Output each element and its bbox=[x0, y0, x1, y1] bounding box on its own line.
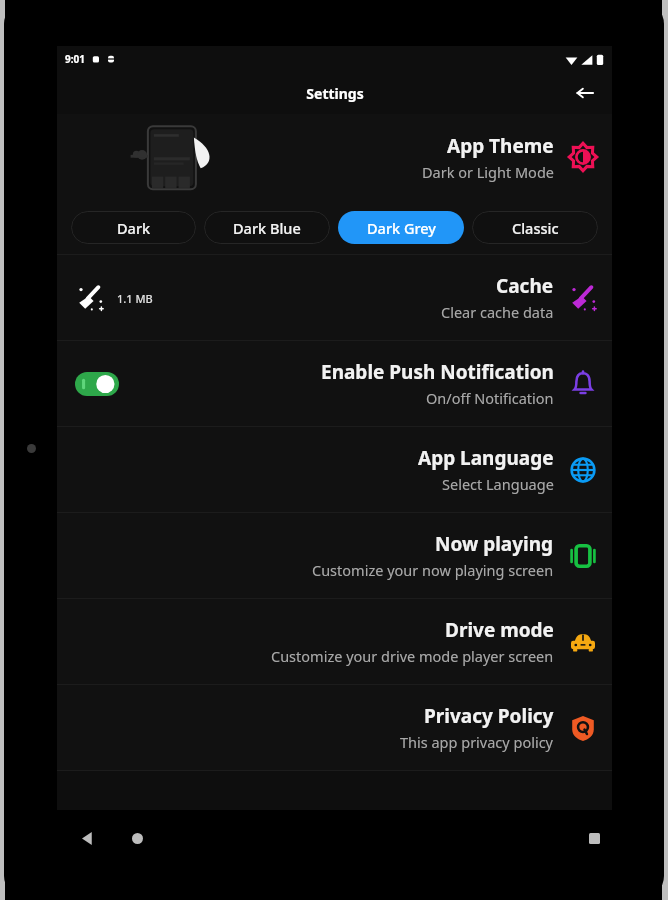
staticText: Settings bbox=[306, 84, 364, 103]
staticText: Cache bbox=[496, 273, 554, 299]
staticText: On/off Notification bbox=[426, 388, 554, 408]
button[interactable]: Dark Grey bbox=[338, 211, 464, 244]
button[interactable]: Classic bbox=[472, 211, 598, 244]
button[interactable]: Enable Push Notification toggle bbox=[75, 372, 119, 396]
staticText: This app privacy policy bbox=[400, 732, 554, 752]
staticText: Dark or Light Mode bbox=[422, 162, 554, 182]
button[interactable]: Privacy Policy bbox=[57, 685, 612, 770]
button[interactable]: Recent apps bbox=[578, 822, 610, 854]
staticText: Dark Grey bbox=[367, 218, 436, 238]
staticText: Dark bbox=[117, 218, 151, 238]
staticText: Enable Push Notification bbox=[321, 359, 554, 385]
staticText: Privacy Policy bbox=[424, 703, 554, 729]
button[interactable]: Back bbox=[570, 78, 600, 108]
button[interactable]: App Language bbox=[57, 427, 612, 512]
staticText: 1.1 MB bbox=[117, 291, 153, 306]
staticText: App Language bbox=[418, 445, 554, 471]
staticText: Dark Blue bbox=[233, 218, 301, 238]
staticText: Customize your drive mode player screen bbox=[271, 646, 554, 666]
staticText: Classic bbox=[512, 218, 559, 238]
button[interactable]: Now playing bbox=[57, 513, 612, 598]
button[interactable]: App Theme bbox=[57, 114, 612, 200]
staticText: Clear cache data bbox=[441, 302, 554, 322]
staticText: Now playing bbox=[435, 531, 554, 557]
staticText: Drive mode bbox=[445, 617, 554, 643]
button[interactable]: Dark bbox=[71, 211, 196, 244]
button[interactable]: Enable Push Notification toggle bbox=[57, 341, 612, 426]
staticText: Customize your now playing screen bbox=[312, 560, 554, 580]
staticText: Select Language bbox=[442, 474, 554, 494]
button[interactable]: Home bbox=[121, 822, 153, 854]
button[interactable]: 1.1 MB bbox=[57, 255, 612, 340]
button[interactable]: Dark Blue bbox=[204, 211, 330, 244]
button[interactable]: Back bbox=[72, 822, 104, 854]
button[interactable]: Drive mode bbox=[57, 599, 612, 684]
staticText: App Theme bbox=[447, 133, 554, 159]
staticText: 9:01 bbox=[65, 52, 85, 66]
